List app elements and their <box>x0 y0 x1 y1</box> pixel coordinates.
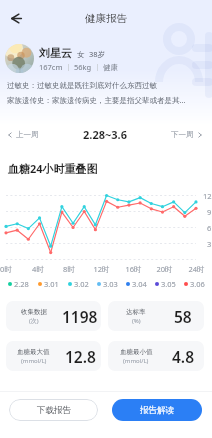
button[interactable]: 收集数据 <box>6 301 101 331</box>
staticText: 4时 <box>32 264 44 273</box>
staticText: 健康报告 <box>85 12 127 25</box>
staticText: 167cm <box>39 62 63 72</box>
staticText: 38岁 <box>89 49 106 59</box>
staticText: 健康 <box>103 63 118 72</box>
staticText: 3.05 <box>161 279 176 289</box>
staticText: 家族遗传史：家族遗传病史，主要是指父辈或者是其... <box>7 95 186 105</box>
staticText: 20时 <box>156 264 173 273</box>
staticText: 16时 <box>125 264 142 273</box>
staticText: 1198 <box>62 306 98 327</box>
button[interactable]: 下一周 <box>167 127 212 142</box>
staticText: 3.03 <box>103 279 118 289</box>
staticText: 12.8 <box>65 346 96 367</box>
staticText: 上一周 <box>16 130 39 139</box>
staticText: 58 <box>174 306 192 327</box>
staticText: 收集数据 <box>21 308 47 316</box>
staticText: 8时 <box>63 264 75 273</box>
staticText: 下载报告 <box>37 405 71 416</box>
staticText: 3.02 <box>74 279 89 289</box>
staticText: 9 <box>207 207 212 217</box>
staticText: (mmol/L) <box>21 357 47 365</box>
staticText: 12时 <box>93 264 110 273</box>
staticText: 56kg <box>74 62 92 72</box>
staticText: 报告解读 <box>140 405 174 416</box>
button[interactable]: 血糖最小值 <box>108 341 204 371</box>
button[interactable]: 血糖最大值 <box>6 341 101 371</box>
staticText: 3.04 <box>132 279 147 289</box>
button[interactable]: 上一周 <box>0 127 43 142</box>
staticText: 血糖最小值 <box>120 348 153 356</box>
staticText: 3.01 <box>44 279 59 289</box>
staticText: 血糖最大值 <box>17 348 50 356</box>
staticText: 24时 <box>188 264 205 273</box>
staticText: 3 <box>207 239 212 249</box>
staticText: 血糖24小时重叠图 <box>8 161 98 176</box>
button[interactable]: 下载报告 <box>9 399 98 421</box>
staticText: 0时 <box>0 264 12 273</box>
staticText: 下一周 <box>171 130 194 139</box>
staticText: 过敏史：过敏史就是既往到底对什么东西过敏 <box>7 81 157 90</box>
staticText: 2.28 <box>14 279 29 289</box>
button[interactable]: 达标率 <box>108 301 204 331</box>
staticText: 12 <box>203 191 212 201</box>
staticText: 2.28~3.6 <box>83 127 127 142</box>
staticText: 刘星云 <box>39 46 72 60</box>
staticText: 女 <box>77 50 85 59</box>
button[interactable]: Back <box>3 6 27 30</box>
button[interactable]: 报告解读 <box>112 399 202 421</box>
staticText: 3.06 <box>190 279 205 289</box>
staticText: (%) <box>132 317 141 325</box>
staticText: (次) <box>29 317 39 325</box>
staticText: (mmol/L) <box>123 357 149 365</box>
staticText: 6 <box>207 223 212 233</box>
staticText: 达标率 <box>126 308 146 316</box>
staticText: 4.8 <box>172 346 195 367</box>
